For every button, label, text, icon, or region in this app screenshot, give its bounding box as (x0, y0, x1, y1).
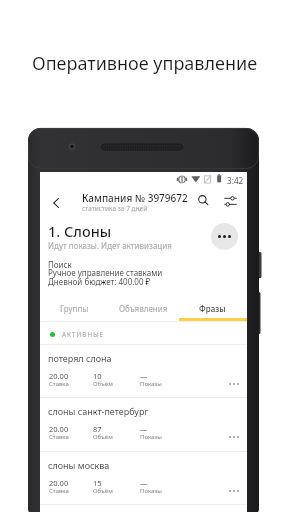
staticText: Ставка (49, 433, 69, 441)
staticText: Показы (140, 487, 162, 495)
staticText: слоны москва (48, 459, 110, 471)
button[interactable]: Filter (219, 190, 241, 212)
staticText: слоны санкт-петербург (48, 405, 149, 417)
button[interactable]: Объявления (109, 296, 178, 320)
staticText: АКТИВНЫЕ (62, 330, 105, 338)
button[interactable]: Row options (226, 378, 241, 390)
staticText: Ставка (49, 380, 69, 388)
staticText: Показы (140, 380, 162, 388)
staticText: Объявления (119, 303, 168, 314)
staticText: — (140, 371, 148, 381)
button[interactable]: Фразы (178, 296, 247, 320)
staticText: 87 (93, 424, 102, 434)
button[interactable]: Группы (40, 296, 109, 320)
staticText: Ставка (49, 487, 69, 495)
button[interactable]: Row options (226, 431, 241, 443)
button[interactable]: Search (192, 190, 214, 212)
staticText: Идут показы. Идет активизация (48, 240, 172, 251)
staticText: Ручное управление ставками (48, 267, 163, 278)
staticText: Группы (60, 303, 89, 314)
staticText: — (140, 478, 148, 488)
button[interactable]: потерял слона (40, 344, 247, 397)
staticText: Поиск (48, 259, 72, 270)
staticText: Объём (93, 380, 113, 388)
staticText: 15 (93, 478, 102, 488)
staticText: Кампания № 3979672 (82, 191, 188, 205)
button[interactable]: Back (44, 191, 67, 214)
staticText: Показы (140, 433, 162, 441)
button[interactable]: Row options (226, 485, 241, 497)
staticText: 10 (93, 371, 102, 381)
staticText: 20.00 (49, 424, 69, 434)
staticText: Фразы (199, 303, 226, 314)
staticText: 20.00 (49, 371, 69, 381)
staticText: 1. Слоны (48, 221, 112, 241)
staticText: Дневной бюджет: 400.00 ₽ (48, 276, 151, 287)
staticText: 20.00 (49, 478, 69, 488)
staticText: — (140, 424, 148, 434)
staticText: Объём (93, 487, 113, 495)
staticText: Объём (93, 433, 113, 441)
button[interactable]: слоны санкт-петербург (40, 397, 247, 450)
button[interactable]: слоны москва (40, 451, 247, 504)
staticText: статистика за 7 дней (82, 204, 148, 213)
staticText: потерял слона (48, 352, 112, 364)
staticText: 3:42 (227, 175, 244, 186)
staticText: Оперативное управление (32, 51, 258, 76)
button[interactable]: More options (211, 223, 238, 250)
